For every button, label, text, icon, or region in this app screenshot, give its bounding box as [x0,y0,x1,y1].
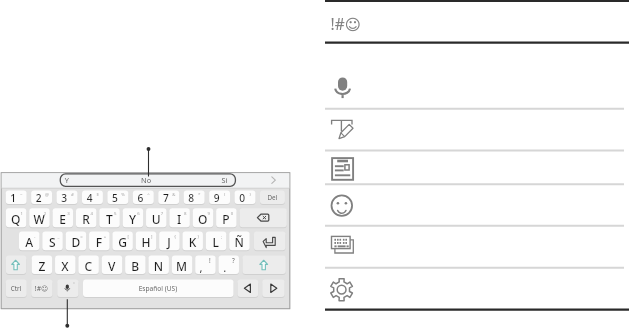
button[interactable]: Emoji [325,184,625,224]
button[interactable]: Settings [325,266,625,310]
button[interactable]: Symbols and emoji [325,4,625,42]
button[interactable]: Voice input [325,43,625,106]
button[interactable]: Clipboard [325,148,625,183]
button[interactable]: Switch keyboard [325,225,625,265]
button[interactable]: Handwriting [325,107,625,147]
